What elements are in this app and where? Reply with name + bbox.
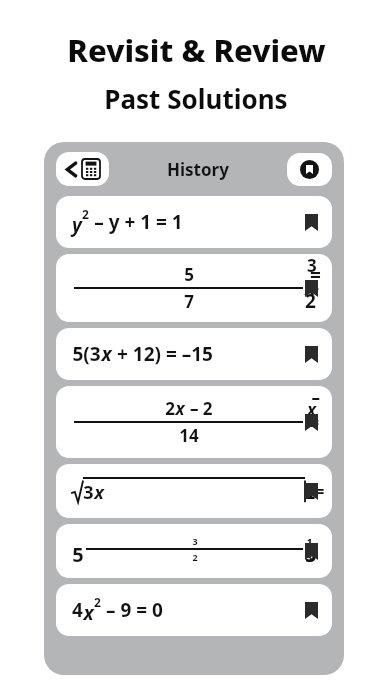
staticText: Past Solutions [104,81,288,116]
button[interactable]: Bookmarks [287,153,332,186]
button[interactable]: 5(3 [56,328,332,380]
staticText: 2 [192,551,198,563]
button[interactable]: 4 [56,584,332,636]
button[interactable]: 5 [56,254,332,322]
staticText: – 9 = 0 [101,597,163,623]
staticText: x [83,600,94,626]
button[interactable]: Back to calculator [56,152,109,186]
button[interactable]: 3 [56,464,332,518]
button[interactable]: 5 [56,524,332,578]
staticText: 2 [82,206,89,222]
staticText: 5 [72,541,84,568]
button[interactable]: 2 [56,386,332,458]
staticText: 14 [179,424,199,447]
staticText: 4 [72,597,83,623]
staticText: – y + 1 = 1 [89,209,183,235]
staticText: 2 [94,594,101,610]
staticText: 2 [165,397,175,420]
staticText: y [72,212,82,238]
staticText: x [94,480,104,505]
staticText: 3 [192,535,198,547]
staticText: x [175,397,185,420]
staticText: x [101,341,112,367]
staticText: 5(3 [72,341,101,367]
staticText: Revisit & Review [67,29,326,71]
staticText: – 2 [185,397,213,420]
staticText: + 12) = –15 [112,341,213,367]
button[interactable]: y [56,196,332,248]
staticText: 5 [184,263,194,286]
staticText: 3 [83,480,94,505]
staticText: History [167,158,229,181]
staticText: 7 [184,290,194,313]
